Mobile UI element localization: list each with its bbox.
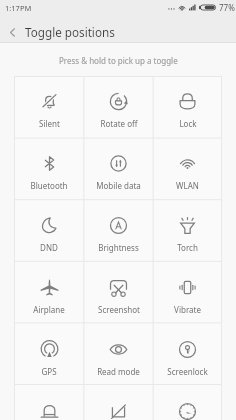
button[interactable]: Vibrate: [153, 262, 222, 324]
button[interactable]: Brightness: [84, 200, 153, 262]
staticText: GPS: [41, 366, 57, 377]
staticText: Torch: [177, 242, 198, 253]
button[interactable]: GPS: [14, 324, 84, 386]
staticText: Mobile data: [96, 180, 141, 191]
button[interactable]: WLAN: [153, 138, 222, 200]
button[interactable]: Rotate off: [84, 76, 153, 138]
button[interactable]: Toggle: [14, 386, 84, 420]
button[interactable]: Screenshot: [84, 262, 153, 324]
staticText: 77%: [219, 2, 235, 13]
button[interactable]: Airplane: [14, 262, 84, 324]
button[interactable]: Back: [0, 18, 25, 46]
staticText: Airplane: [33, 304, 65, 315]
staticText: Screenlock: [167, 366, 208, 377]
staticText: Toggle positions: [25, 24, 115, 40]
button[interactable]: Screenlock: [153, 324, 222, 386]
button[interactable]: DND: [14, 200, 84, 262]
staticText: WLAN: [176, 180, 199, 191]
button[interactable]: Mobile data: [84, 138, 153, 200]
staticText: Lock: [179, 118, 197, 129]
button[interactable]: Toggle: [153, 386, 222, 420]
button[interactable]: Toggle: [84, 386, 153, 420]
staticText: Screenshot: [98, 304, 140, 315]
button[interactable]: Lock: [153, 76, 222, 138]
staticText: 1:17PM: [5, 3, 32, 13]
staticText: Read mode: [97, 366, 140, 377]
button[interactable]: Bluetooth: [14, 138, 84, 200]
staticText: Rotate off: [100, 118, 138, 129]
button[interactable]: Read mode: [84, 324, 153, 386]
staticText: DND: [40, 242, 58, 253]
staticText: Bluetooth: [30, 180, 68, 191]
staticText: Brightness: [98, 242, 139, 253]
button[interactable]: Torch: [153, 200, 222, 262]
staticText: Vibrate: [174, 304, 201, 315]
staticText: Press & hold to pick up a toggle: [59, 55, 178, 66]
button[interactable]: Silent: [14, 76, 84, 138]
staticText: Silent: [39, 118, 60, 129]
